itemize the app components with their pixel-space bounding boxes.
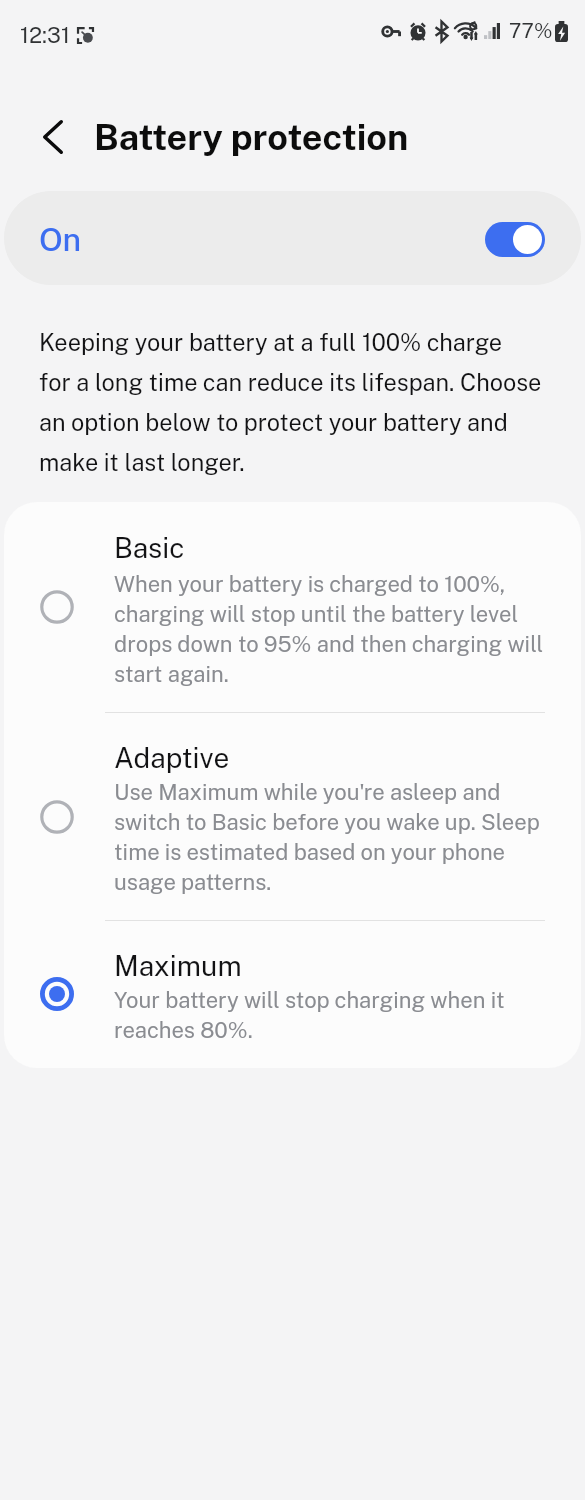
staticText: On bbox=[39, 221, 82, 259]
staticText: Adaptive bbox=[114, 741, 230, 775]
staticText: When your battery is charged to 100%, ch… bbox=[114, 568, 544, 688]
staticText: Keeping your battery at a full 100% char… bbox=[39, 319, 542, 479]
button[interactable]: Adaptive bbox=[4, 713, 581, 921]
staticText: Battery protection bbox=[94, 114, 409, 158]
button[interactable]: Basic bbox=[4, 502, 581, 713]
staticText: 12:31 bbox=[20, 22, 70, 48]
button[interactable]: Navigate up bbox=[26, 110, 79, 163]
staticText: Maximum bbox=[114, 949, 242, 983]
staticText: Use Maximum while you're asleep and swit… bbox=[114, 776, 540, 896]
button[interactable]: On bbox=[4, 191, 581, 285]
staticText: Basic bbox=[114, 531, 185, 565]
staticText: Your battery will stop charging when it … bbox=[114, 984, 505, 1044]
staticText: 77% bbox=[509, 19, 553, 43]
button[interactable]: Maximum bbox=[4, 921, 581, 1068]
